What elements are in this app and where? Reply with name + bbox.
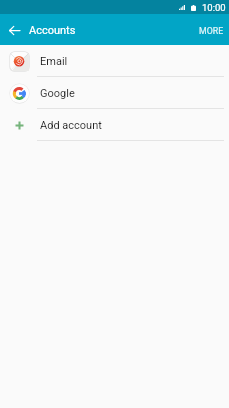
button[interactable]: Google [0,77,229,109]
staticText: Add account [40,119,102,132]
button[interactable]: MORE [194,14,229,45]
staticText: Google [40,87,75,100]
staticText: 10:00 [202,2,226,13]
button[interactable]: Email [0,45,229,77]
staticText: Email [40,55,68,68]
button[interactable]: Add account [0,109,229,141]
button[interactable]: Navigate up [0,14,28,45]
staticText: MORE [199,26,224,36]
staticText: Accounts [29,24,76,37]
